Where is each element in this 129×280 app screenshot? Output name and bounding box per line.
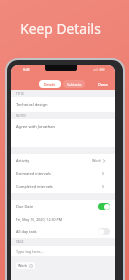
button[interactable]: Due Date (11, 200, 115, 213)
staticText: Work (92, 158, 102, 163)
staticText: Due Date (16, 204, 34, 209)
button[interactable]: Activity (11, 154, 115, 167)
button[interactable]: Done (97, 80, 109, 88)
button[interactable]: Work (18, 263, 33, 268)
button[interactable]: Completed intervals (11, 180, 115, 193)
button[interactable]: Estimated intervals (11, 167, 115, 180)
staticText: Done (98, 82, 108, 87)
staticText: Subtasks (67, 82, 82, 87)
staticText: Agree with Jonathan (16, 124, 56, 130)
staticText: Fri, May 15, 2020, 12:30 PM (16, 217, 62, 222)
staticText: TITLE (16, 92, 25, 96)
staticText: Work (18, 263, 27, 268)
staticText: Completed intervals (16, 184, 53, 189)
staticText: Technical design (16, 102, 48, 108)
staticText: Activity (16, 158, 30, 163)
button[interactable]: Details (39, 80, 61, 88)
staticText: Type tag here... (16, 249, 44, 254)
button[interactable]: All day task (11, 225, 115, 238)
staticText: 9:41 (23, 67, 30, 72)
staticText: Keep Details (0, 19, 125, 38)
other: Remove tag (29, 264, 33, 268)
staticText: NOTES (16, 114, 26, 118)
staticText: TAGS (16, 240, 24, 244)
staticText: All day task (16, 229, 37, 234)
staticText: Details (44, 82, 56, 87)
button[interactable]: Subtasks (63, 80, 85, 88)
staticText: Estimated intervals (16, 171, 51, 176)
staticText: 5 (102, 171, 105, 176)
staticText: 5 (102, 184, 105, 189)
